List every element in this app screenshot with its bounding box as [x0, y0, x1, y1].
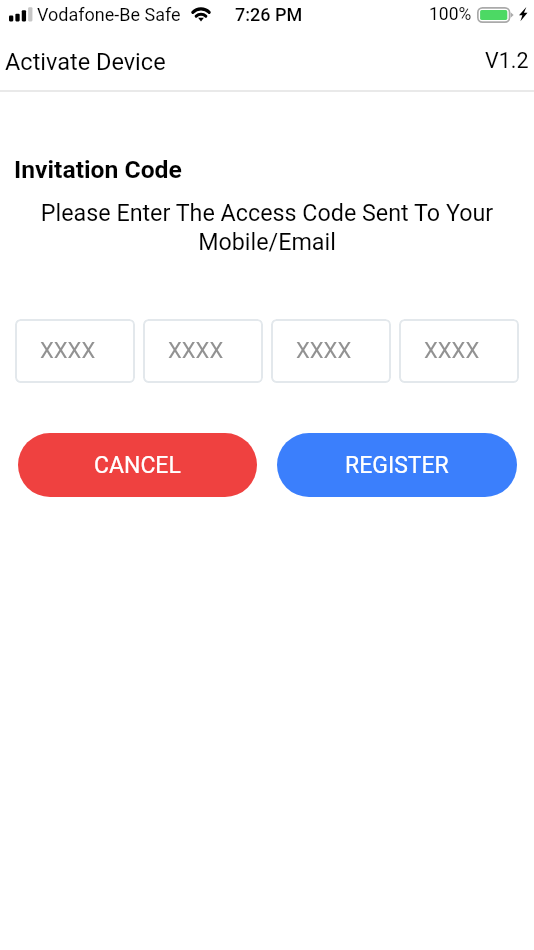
staticText: REGISTER [345, 452, 449, 479]
other: Battery full [477, 7, 514, 23]
staticText: 100% [429, 4, 472, 25]
staticText: XXXX [424, 338, 480, 364]
button[interactable]: XXXX [15, 319, 135, 383]
staticText: XXXX [168, 338, 224, 364]
staticText: V1.2 [485, 48, 529, 73]
other: Wi-Fi connected [191, 4, 212, 23]
staticText: 7:26 PM [235, 4, 303, 25]
staticText: CANCEL [94, 452, 181, 479]
button[interactable]: V1.2 [485, 48, 529, 73]
button[interactable]: CANCEL [18, 433, 257, 497]
other: Charging [519, 7, 529, 23]
staticText: XXXX [40, 338, 96, 364]
other: Cellular signal strength [9, 6, 34, 22]
staticText: Vodafone-Be Safe [37, 4, 181, 25]
staticText: Activate Device [5, 48, 166, 76]
button[interactable]: XXXX [143, 319, 263, 383]
staticText: Please Enter The Access Code Sent To You… [36, 199, 498, 255]
button[interactable]: XXXX [271, 319, 391, 383]
button[interactable]: REGISTER [277, 433, 517, 497]
button[interactable]: XXXX [399, 319, 519, 383]
staticText: XXXX [296, 338, 352, 364]
staticText: Invitation Code [14, 155, 182, 184]
